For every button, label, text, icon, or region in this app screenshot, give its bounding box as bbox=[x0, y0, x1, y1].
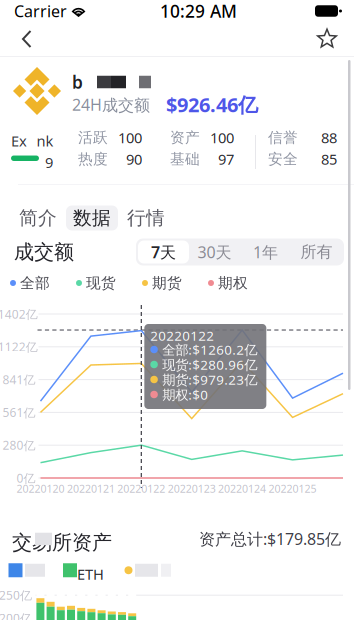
staticText: 活跃 bbox=[78, 128, 108, 146]
staticText: ETH bbox=[77, 564, 104, 584]
staticText: 10:29 AM bbox=[160, 0, 237, 22]
staticText: 期权:$0 bbox=[162, 386, 208, 403]
staticText: 信誉 bbox=[268, 128, 298, 146]
staticText: 20220122 bbox=[150, 327, 214, 344]
staticText: 20220120 bbox=[16, 481, 64, 496]
staticText: 成交额 bbox=[14, 240, 74, 264]
staticText: 1年 bbox=[253, 241, 278, 263]
staticText: 资产 bbox=[170, 128, 200, 146]
staticText: 30天 bbox=[197, 241, 231, 263]
staticText: 24H成交额 bbox=[72, 94, 150, 115]
staticText: 1122亿 bbox=[0, 339, 38, 355]
staticText: 热度 bbox=[78, 150, 108, 168]
staticText: nk bbox=[36, 131, 53, 150]
staticText: 250亿 bbox=[0, 587, 32, 603]
staticText: Carrier bbox=[14, 0, 67, 22]
staticText: 现货 bbox=[86, 274, 116, 292]
staticText: 行情 bbox=[127, 206, 165, 229]
staticText: 90 bbox=[126, 149, 142, 169]
staticText: 20220123 bbox=[168, 481, 216, 496]
staticText: 88 bbox=[321, 128, 337, 147]
staticText: 期权 bbox=[218, 274, 248, 292]
staticText: 基础 bbox=[170, 150, 200, 168]
staticText: 561亿 bbox=[2, 404, 35, 420]
staticText: 7天 bbox=[151, 241, 176, 263]
button[interactable]: 所有 bbox=[291, 240, 342, 263]
button[interactable]: Add to favorites bbox=[305, 22, 349, 56]
staticText: 交易所资产 bbox=[12, 530, 112, 555]
staticText: 全部 bbox=[20, 274, 50, 292]
staticText: 0亿 bbox=[16, 470, 35, 486]
staticText: 280亿 bbox=[2, 437, 35, 453]
staticText: Ex bbox=[11, 131, 27, 150]
button[interactable]: Back bbox=[5, 22, 49, 56]
staticText: 全部:$1260.2亿 bbox=[162, 341, 257, 358]
button[interactable]: 简介 bbox=[12, 205, 64, 230]
staticText: 期货:$979.23亿 bbox=[162, 371, 257, 388]
staticText: 数据 bbox=[73, 206, 111, 229]
staticText: 所有 bbox=[300, 242, 332, 262]
staticText: 100 bbox=[210, 128, 234, 147]
button[interactable]: 7天 bbox=[138, 240, 189, 263]
button[interactable]: 数据 bbox=[66, 205, 118, 230]
button[interactable]: 30天 bbox=[189, 240, 240, 263]
staticText: b bbox=[72, 70, 83, 93]
staticText: $926.46亿 bbox=[166, 91, 258, 118]
button[interactable]: 行情 bbox=[120, 205, 172, 230]
staticText: 9 bbox=[45, 152, 53, 172]
staticText: 简介 bbox=[19, 206, 57, 229]
staticText: 现货:$280.96亿 bbox=[162, 356, 257, 373]
staticText: 841亿 bbox=[2, 372, 35, 387]
staticText: 20220122 bbox=[117, 481, 165, 496]
staticText: 20220125 bbox=[268, 481, 316, 496]
staticText: 100 bbox=[118, 128, 142, 147]
staticText: 资产总计:$179.85亿 bbox=[199, 528, 341, 549]
staticText: 97 bbox=[218, 149, 234, 169]
staticText: 85 bbox=[321, 149, 337, 169]
staticText: 期货 bbox=[152, 274, 182, 292]
staticText: 20220121 bbox=[67, 481, 115, 496]
staticText: 安全 bbox=[268, 150, 298, 168]
staticText: 200亿 bbox=[0, 610, 32, 620]
staticText: 1402亿 bbox=[0, 306, 38, 322]
staticText: 20220124 bbox=[218, 481, 266, 496]
button[interactable]: 1年 bbox=[240, 240, 291, 263]
